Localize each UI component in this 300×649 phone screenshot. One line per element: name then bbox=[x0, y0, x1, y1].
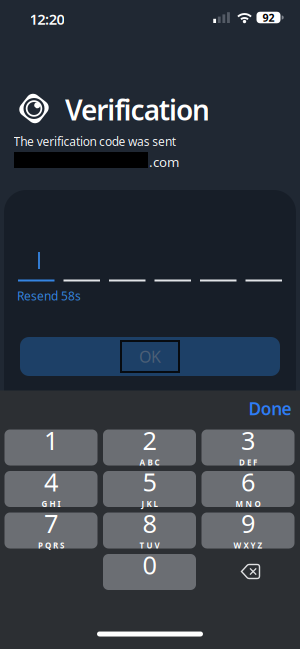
staticText: OK bbox=[139, 346, 161, 367]
button[interactable]: 9 bbox=[201, 512, 294, 548]
button[interactable]: Done bbox=[248, 397, 292, 420]
staticText: Resend 58s bbox=[17, 288, 81, 304]
staticText: A B C bbox=[139, 457, 159, 468]
staticText: 6 bbox=[241, 465, 255, 498]
staticText: T U V bbox=[139, 540, 159, 551]
staticText: J K L bbox=[141, 498, 157, 509]
button[interactable]: 5 bbox=[103, 471, 196, 507]
staticText: 12:20 bbox=[30, 9, 64, 29]
staticText: P Q R S bbox=[38, 540, 64, 551]
button[interactable]: 6 bbox=[201, 471, 294, 507]
staticText: M N O bbox=[235, 498, 260, 509]
staticText: .com bbox=[149, 153, 179, 171]
staticText: Done bbox=[248, 397, 292, 420]
staticText: G H I bbox=[41, 498, 60, 509]
staticText: 1 bbox=[44, 423, 58, 457]
staticText: 7 bbox=[44, 506, 58, 540]
button[interactable]: Resend 58s bbox=[17, 288, 81, 304]
button[interactable]: 4 bbox=[4, 471, 97, 507]
button[interactable]: 3 bbox=[201, 429, 294, 465]
button[interactable]: 0 bbox=[103, 554, 196, 590]
staticText: 4 bbox=[44, 465, 58, 498]
button[interactable]: 8 bbox=[103, 512, 196, 548]
staticText: 0 bbox=[142, 548, 156, 581]
staticText: 3 bbox=[241, 423, 255, 457]
staticText: The verification code was sent bbox=[13, 133, 176, 149]
button[interactable]: Delete bbox=[204, 553, 297, 589]
staticText: 2 bbox=[142, 423, 156, 457]
button[interactable]: 7 bbox=[4, 512, 97, 548]
staticText: W X Y Z bbox=[233, 540, 262, 551]
staticText bbox=[50, 457, 52, 468]
staticText: 9 bbox=[241, 506, 255, 540]
staticText: D E F bbox=[239, 457, 257, 468]
staticText: 5 bbox=[142, 465, 156, 498]
staticText bbox=[148, 581, 150, 592]
staticText: Verification bbox=[65, 91, 210, 128]
button[interactable]: OK bbox=[20, 337, 280, 376]
button[interactable]: 1 bbox=[4, 429, 97, 465]
staticText: 92 bbox=[262, 11, 274, 25]
staticText: 8 bbox=[142, 506, 156, 540]
button[interactable]: 2 bbox=[103, 429, 196, 465]
